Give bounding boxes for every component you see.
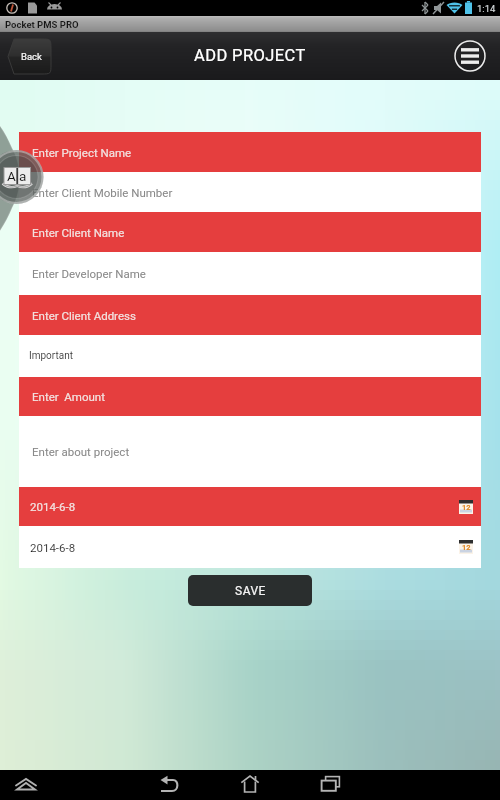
staticText: 2014-6-8 bbox=[30, 541, 76, 554]
other: Pick date bbox=[459, 500, 473, 514]
staticText: 1:14 bbox=[477, 3, 496, 14]
button[interactable]: Home bbox=[226, 770, 274, 800]
button[interactable]: Enter about project bbox=[19, 416, 481, 487]
button[interactable]: SAVE bbox=[188, 575, 312, 606]
staticText: Back bbox=[21, 51, 42, 62]
button[interactable]: Enter Client Name bbox=[19, 212, 481, 252]
button[interactable]: Enter Client Address bbox=[19, 295, 481, 335]
other: Dictionary bbox=[0, 0, 500, 800]
button[interactable]: Back bbox=[146, 770, 194, 800]
staticText: Enter Client Name bbox=[32, 226, 125, 239]
button[interactable]: Enter Amount bbox=[19, 377, 481, 416]
button[interactable]: Important bbox=[19, 335, 481, 377]
button[interactable]: Enter Client Mobile Number bbox=[19, 172, 481, 212]
button[interactable]: Menu bbox=[453, 39, 487, 73]
staticText: Enter Developer Name bbox=[32, 267, 146, 280]
staticText: SAVE bbox=[235, 584, 266, 598]
button[interactable]: Enter Project Name bbox=[19, 132, 481, 172]
button[interactable]: Back bbox=[8, 39, 51, 74]
button[interactable]: 2014-6-8 bbox=[19, 487, 481, 526]
staticText: Enter Client Address bbox=[32, 309, 136, 322]
staticText: 12 bbox=[462, 543, 471, 552]
button[interactable]: Expand bbox=[2, 770, 50, 800]
staticText: ADD PROJECT bbox=[194, 46, 306, 65]
staticText: A bbox=[7, 168, 16, 184]
staticText: Enter about project bbox=[32, 445, 130, 458]
button[interactable]: Enter Developer Name bbox=[19, 252, 481, 295]
staticText: a bbox=[19, 168, 27, 184]
staticText: 2014-6-8 bbox=[30, 500, 76, 513]
button[interactable]: 2014-6-8 bbox=[19, 526, 481, 568]
button[interactable] bbox=[0, 150, 43, 203]
staticText: 12 bbox=[462, 503, 471, 512]
staticText: Important bbox=[29, 350, 73, 362]
staticText: Pocket PMS PRO bbox=[5, 19, 79, 30]
staticText: Enter Project Name bbox=[32, 146, 132, 159]
staticText: Enter Client Mobile Number bbox=[32, 186, 173, 199]
button[interactable]: Recent apps bbox=[306, 770, 354, 800]
other: Pick date bbox=[459, 540, 473, 554]
staticText: Enter Amount bbox=[32, 390, 105, 403]
